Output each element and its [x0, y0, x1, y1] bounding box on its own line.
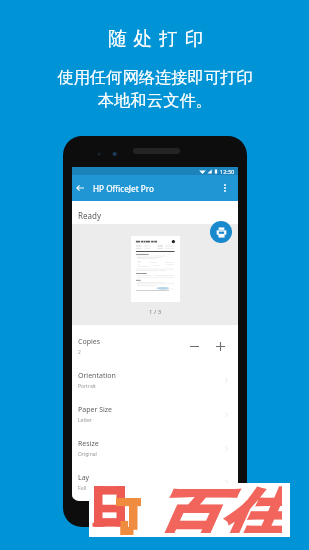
button[interactable]: Lay	[72, 465, 238, 499]
button[interactable]: Orientation	[72, 363, 238, 397]
button[interactable]: Print	[210, 221, 232, 243]
staticText: 百佳	[150, 479, 282, 533]
staticText: 1 / 3	[149, 308, 162, 316]
staticText: Copies	[78, 337, 101, 347]
button[interactable]: Copies	[72, 329, 238, 363]
button[interactable]: Back	[72, 180, 88, 196]
button[interactable]: More options	[216, 179, 234, 197]
staticText: Resize	[78, 439, 99, 449]
staticText: Orientation	[78, 371, 116, 381]
staticText: Portrait	[78, 383, 96, 390]
staticText: 2	[78, 349, 81, 356]
staticText: Full	[78, 485, 87, 492]
staticText: 12:30	[220, 168, 235, 175]
staticText: Letter	[78, 417, 92, 424]
staticText: Ready	[78, 210, 101, 221]
button[interactable]: Resize	[72, 431, 238, 465]
staticText: Original	[78, 451, 97, 458]
staticText: Lay	[78, 473, 90, 483]
button[interactable]: Paper Size	[72, 397, 238, 431]
staticText: 使用任何网络连接即可打印 本地和云文件。	[57, 67, 253, 111]
staticText: Paper Size	[78, 405, 113, 415]
staticText: HP OfficeJet Pro	[93, 183, 154, 194]
staticText: 随处打印	[108, 27, 210, 50]
